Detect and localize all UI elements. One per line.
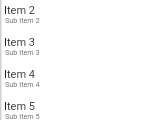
staticText: Sub Item 3 — [5, 48, 40, 56]
staticText: Sub Item 5 — [5, 112, 40, 120]
button[interactable]: Item 5 — [0, 96, 160, 120]
button[interactable]: Item 2 — [0, 0, 160, 32]
button[interactable]: Item 4 — [0, 64, 160, 96]
button[interactable]: Item 3 — [0, 32, 160, 64]
staticText: Item 2 — [4, 4, 35, 17]
staticText: Item 3 — [4, 36, 35, 49]
staticText: Item 5 — [4, 100, 35, 113]
staticText: Sub Item 2 — [5, 16, 40, 24]
staticText: Sub Item 4 — [5, 80, 40, 88]
staticText: Item 4 — [4, 68, 35, 81]
